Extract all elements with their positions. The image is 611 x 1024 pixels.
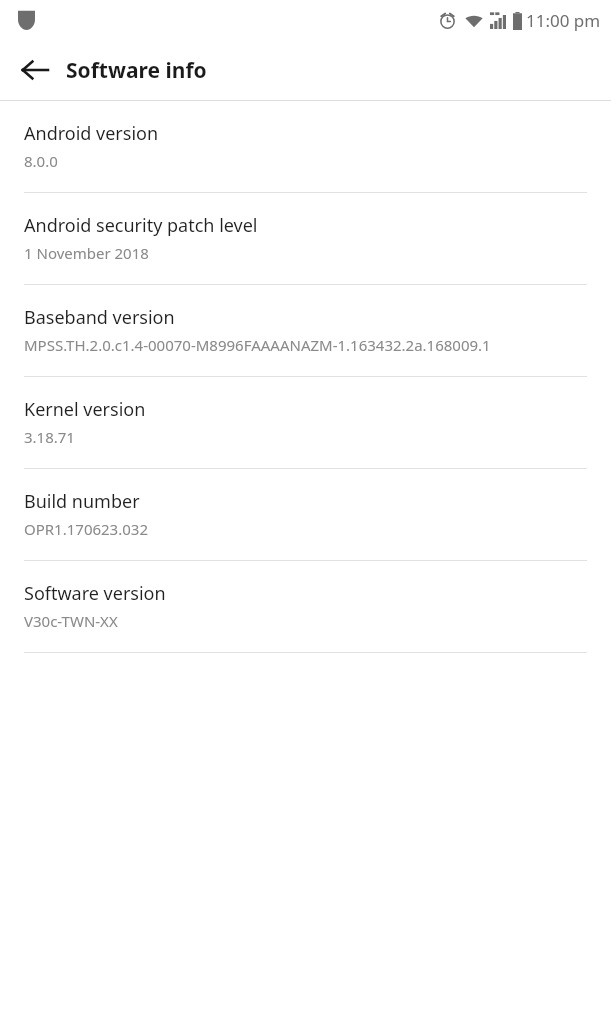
button[interactable]: Android version (0, 101, 611, 193)
staticText: Software info (66, 56, 207, 85)
staticText: Android version (24, 121, 159, 146)
staticText: OPR1.170623.032 (24, 519, 148, 539)
button[interactable]: Kernel version (0, 377, 611, 469)
button[interactable]: Build number (0, 469, 611, 561)
staticText: 1 November 2018 (24, 243, 149, 263)
button[interactable]: Back (10, 45, 60, 95)
staticText: 3.18.71 (24, 427, 75, 447)
button[interactable]: Software version (0, 561, 611, 653)
button[interactable]: Android security patch level (0, 193, 611, 285)
staticText: Build number (24, 489, 140, 514)
staticText: Software version (24, 581, 166, 606)
staticText: V30c-TWN-XX (24, 611, 118, 631)
staticText: Baseband version (24, 305, 175, 330)
staticText: Kernel version (24, 397, 146, 422)
button[interactable]: Baseband version (0, 285, 611, 377)
staticText: 11:00 pm (526, 9, 601, 32)
staticText: MPSS.TH.2.0.c1.4-00070-M8996FAAAANAZM-1.… (24, 335, 491, 355)
staticText: 8.0.0 (24, 151, 58, 171)
staticText: Android security patch level (24, 213, 258, 238)
